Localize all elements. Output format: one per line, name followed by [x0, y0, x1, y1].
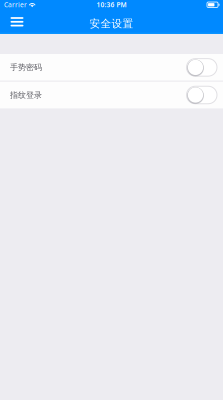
button[interactable]: Menu — [0, 13, 33, 33]
staticText: 手势密码 — [10, 62, 42, 72]
button[interactable]: 指纹登录 — [0, 82, 223, 108]
staticText: 10:36 PM — [96, 0, 126, 9]
button[interactable]: 手势密码 — [0, 54, 223, 81]
staticText: 安全设置 — [89, 17, 133, 30]
staticText: Carrier — [4, 0, 27, 9]
staticText: 指纹登录 — [10, 90, 42, 100]
